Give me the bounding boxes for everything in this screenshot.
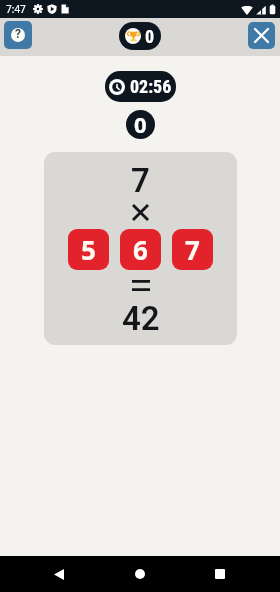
staticText: 7 bbox=[185, 232, 200, 267]
staticText: 6 bbox=[133, 232, 148, 267]
button[interactable]: 6 bbox=[120, 229, 161, 270]
staticText: 02:56 bbox=[130, 76, 172, 97]
button[interactable]: Help bbox=[4, 21, 32, 49]
staticText: 5 bbox=[81, 232, 96, 267]
staticText: 42 bbox=[122, 299, 160, 338]
staticText: 7 bbox=[131, 161, 150, 200]
button[interactable]: Home bbox=[125, 559, 155, 589]
staticText: 7:47 bbox=[6, 2, 26, 16]
staticText: 0 bbox=[134, 110, 147, 138]
button[interactable]: Recents bbox=[205, 559, 235, 589]
staticText: ? bbox=[15, 28, 21, 41]
button[interactable]: Close bbox=[248, 22, 275, 49]
button[interactable]: Back bbox=[44, 559, 74, 589]
button[interactable]: 0 bbox=[119, 22, 161, 50]
button[interactable]: 7 bbox=[172, 229, 213, 270]
button[interactable]: 02:56 bbox=[105, 71, 176, 102]
staticText: 0 bbox=[145, 26, 155, 47]
button[interactable]: 5 bbox=[68, 229, 109, 270]
